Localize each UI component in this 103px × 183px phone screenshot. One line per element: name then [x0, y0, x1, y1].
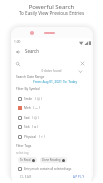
- button[interactable]: From: Aug 01, 2021: [33, 80, 62, 84]
- button[interactable]: Entry much contain all selected tags: [18, 166, 78, 172]
- staticText: ( ☹ ): [32, 116, 39, 120]
- staticText: Search: [25, 48, 39, 54]
- button[interactable]: Clear search: [80, 61, 85, 66]
- staticText: To Easily View Previous Entries: [0, 10, 103, 16]
- staticText: Search Date Range: [16, 75, 45, 79]
- button[interactable]: [12, 46, 91, 58]
- staticText: ( ☺ ): [35, 97, 42, 101]
- button[interactable]: Meh: [18, 104, 78, 112]
- staticText: Filter By Symbol: [16, 87, 40, 91]
- staticText: Physical: [24, 135, 37, 139]
- button[interactable]: A P P L Y: [72, 174, 86, 180]
- staticText: To Read: [20, 158, 31, 162]
- button[interactable]: To: Today: [63, 80, 78, 84]
- staticText: To: Today: [63, 80, 78, 84]
- staticText: select tag: [16, 151, 29, 155]
- staticText: Meh: [24, 106, 31, 110]
- button[interactable]: Physical: [18, 133, 78, 141]
- staticText: From: Aug 01, 2021: [33, 80, 62, 84]
- staticText: Powerful Search: [0, 3, 103, 11]
- staticText: Smile: [24, 97, 33, 101]
- button[interactable]: Expand: [78, 69, 82, 73]
- button[interactable]: Back: [15, 49, 20, 54]
- button[interactable]: Smile: [18, 95, 78, 103]
- staticText: ( ⊕ ): [32, 125, 39, 129]
- staticText: C L E A R: [20, 175, 32, 179]
- staticText: Sad: [24, 116, 30, 120]
- staticText: Filter Tags: [16, 144, 32, 148]
- staticText: ( ⚡ ): [39, 135, 45, 139]
- staticText: 1:00: [14, 40, 21, 44]
- button[interactable]: Done Reading: [40, 157, 67, 163]
- staticText: 0 dates found: [0, 69, 103, 73]
- staticText: A P P L Y: [73, 175, 85, 179]
- button[interactable]: Sad: [18, 114, 78, 122]
- button[interactable]: Sick: [18, 123, 78, 131]
- staticText: Done Reading: [42, 158, 61, 162]
- staticText: Entry much contain all selected tags: [24, 167, 72, 171]
- staticText: Sick: [24, 125, 30, 129]
- button[interactable]: C L E A R: [19, 174, 33, 180]
- staticText: ( — ): [33, 106, 40, 110]
- button[interactable]: To Read: [18, 157, 37, 163]
- button[interactable]: Search: [15, 61, 20, 66]
